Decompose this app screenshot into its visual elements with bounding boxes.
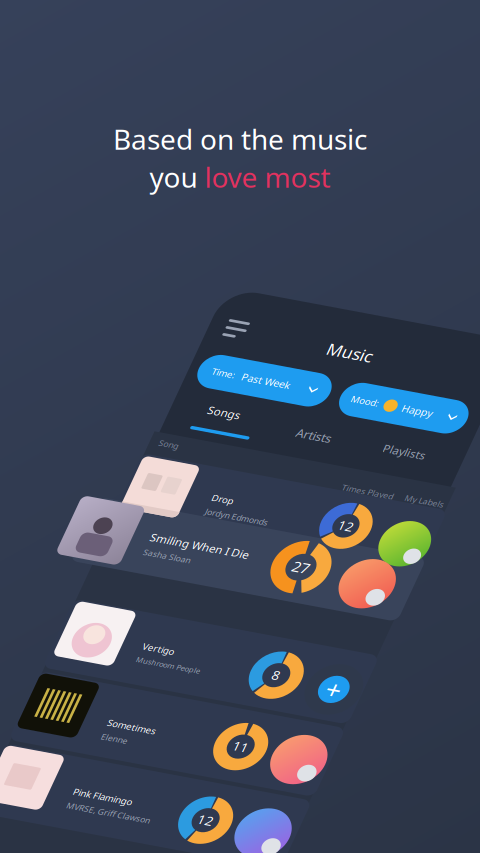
button[interactable]: Menu bbox=[250, 329, 290, 361]
staticText: Jordyn Edmonds bbox=[337, 609, 427, 625]
staticText: Based on the music bbox=[113, 120, 367, 158]
staticText: Sasha Sloan bbox=[280, 684, 348, 700]
staticText: Song bbox=[233, 522, 261, 538]
button[interactable]: Mood: bbox=[445, 388, 480, 440]
button[interactable]: Artists bbox=[391, 464, 477, 492]
staticText: you bbox=[149, 158, 204, 196]
button[interactable]: Songs bbox=[258, 455, 344, 483]
staticText: Past Week bbox=[302, 403, 372, 422]
button[interactable]: Time: bbox=[240, 386, 429, 438]
staticText: Artists bbox=[409, 467, 459, 490]
staticText: Time: bbox=[259, 403, 293, 421]
staticText: love most bbox=[204, 158, 330, 196]
staticText: Drop bbox=[337, 586, 368, 604]
staticText: Mood: bbox=[460, 405, 480, 423]
staticText: Smiling When I Die bbox=[280, 658, 422, 679]
